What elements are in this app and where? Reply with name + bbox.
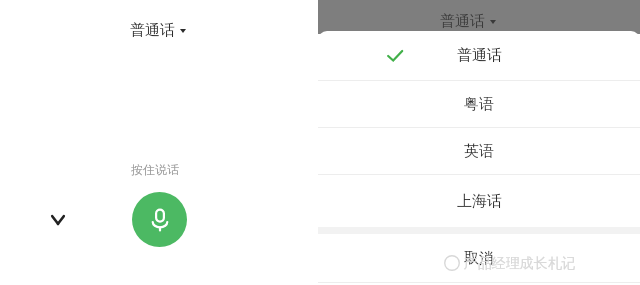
button[interactable]: 英语: [318, 128, 640, 174]
staticText: 产品经理成长札记: [460, 253, 576, 272]
button[interactable]: 粤语: [318, 81, 640, 127]
staticText: 普通话: [130, 21, 175, 40]
staticText: 上海话: [457, 192, 502, 211]
button[interactable]: 按住说话: [132, 192, 187, 247]
button[interactable]: 普通话: [440, 12, 497, 31]
button[interactable]: 收起: [42, 204, 74, 236]
button[interactable]: 普通话: [126, 19, 191, 42]
button[interactable]: 上海话: [318, 175, 640, 227]
staticText: 英语: [464, 142, 494, 161]
staticText: 粤语: [464, 95, 494, 114]
button[interactable]: 普通话: [318, 31, 640, 80]
staticText: 普通话: [457, 46, 502, 65]
staticText: 普通话: [440, 12, 485, 31]
staticText: 按住说话: [131, 162, 179, 177]
button[interactable]: 取消: [318, 234, 640, 282]
staticText: 取消: [464, 249, 494, 268]
